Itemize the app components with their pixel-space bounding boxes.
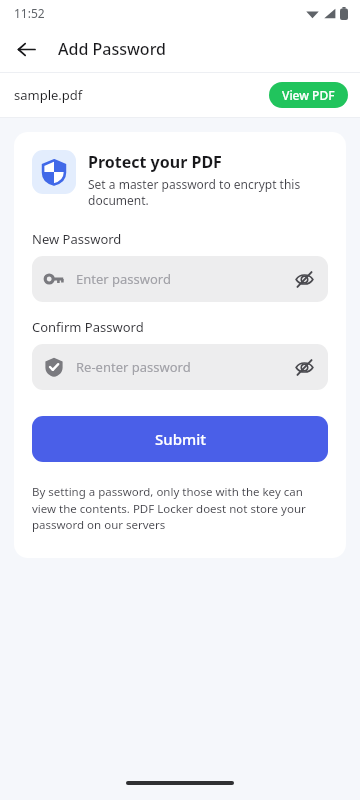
staticText: sample.pdf (14, 86, 83, 104)
button[interactable]: Re-enter password (32, 344, 328, 390)
staticText: Confirm Password (32, 318, 144, 336)
staticText: View PDF (282, 87, 335, 103)
staticText: Protect your PDF (88, 151, 222, 173)
staticText: Submit (155, 429, 206, 449)
staticText: New Password (32, 230, 122, 248)
staticText: By setting a password, only those with t… (32, 484, 328, 532)
button[interactable]: View PDF (269, 82, 348, 108)
staticText: Set a master password to encrypt this do… (88, 176, 328, 208)
button[interactable]: Show password (292, 355, 316, 379)
button[interactable]: Show password (292, 267, 316, 291)
staticText: Re-enter password (76, 358, 292, 376)
staticText: Add Password (58, 38, 167, 60)
button[interactable]: Back (10, 33, 42, 65)
button[interactable]: Enter password (32, 256, 328, 302)
button[interactable]: Submit (32, 416, 328, 462)
staticText: 11:52 (14, 5, 45, 21)
staticText: Enter password (76, 270, 292, 288)
